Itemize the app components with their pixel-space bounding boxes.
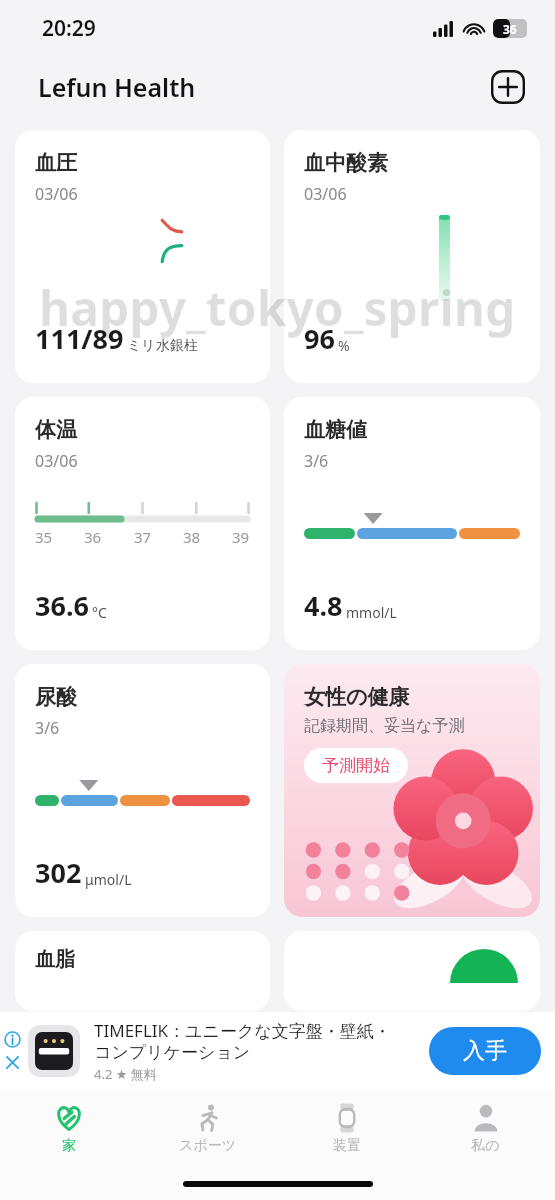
- staticText: 111/89: [35, 320, 124, 357]
- staticText: μmol/L: [85, 870, 132, 889]
- button[interactable]: 入手: [429, 1027, 541, 1075]
- staticText: 39: [232, 527, 250, 547]
- staticText: Lefun Health: [38, 70, 196, 104]
- staticText: 3/6: [304, 450, 329, 472]
- staticText: 35: [35, 527, 53, 547]
- staticText: 予測開始: [322, 755, 390, 776]
- button[interactable]: 家: [0, 1090, 138, 1168]
- button[interactable]: 体温: [15, 397, 270, 650]
- staticText: 38: [183, 527, 201, 547]
- button[interactable]: 血脂: [15, 931, 270, 1011]
- staticText: 体温: [35, 417, 77, 443]
- button[interactable]: 血中酸素: [284, 130, 540, 383]
- staticText: ミリ水銀柱: [127, 337, 198, 355]
- staticText: 私の: [471, 1137, 500, 1155]
- staticText: 4.2 ★ 無料: [94, 1065, 157, 1083]
- button[interactable]: 尿酸: [15, 664, 270, 917]
- staticText: スポーツ: [179, 1137, 236, 1155]
- staticText: happy_tokyo_spring: [39, 275, 516, 340]
- button[interactable]: スポーツ: [138, 1090, 277, 1168]
- staticText: 302: [35, 854, 82, 891]
- button[interactable]: 女性の健康: [284, 664, 540, 917]
- staticText: °C: [92, 603, 107, 622]
- button[interactable]: Close ad: [4, 1054, 21, 1071]
- staticText: 3/6: [35, 717, 60, 739]
- button[interactable]: Add: [491, 70, 525, 104]
- staticText: 03/06: [35, 450, 78, 472]
- staticText: 血圧: [35, 150, 77, 176]
- button[interactable]: 私の: [416, 1090, 555, 1168]
- button[interactable]: 予測開始: [304, 748, 408, 783]
- staticText: 装置: [333, 1137, 361, 1155]
- staticText: 入手: [463, 1037, 507, 1065]
- staticText: 03/06: [35, 183, 78, 205]
- button[interactable]: [284, 931, 540, 1011]
- staticText: 血脂: [35, 947, 75, 972]
- staticText: TIMEFLIK：ユニークな文字盤・壁紙・: [94, 1019, 391, 1042]
- staticText: 血糖値: [304, 417, 367, 443]
- button[interactable]: 装置: [277, 1090, 416, 1168]
- staticText: 女性の健康: [304, 684, 410, 710]
- button[interactable]: 血糖値: [284, 397, 540, 650]
- button[interactable]: Ad info: [4, 1031, 21, 1048]
- staticText: 37: [134, 527, 152, 547]
- staticText: 血中酸素: [304, 150, 388, 176]
- staticText: 36.6: [35, 587, 89, 624]
- staticText: 20:29: [42, 14, 96, 43]
- staticText: mmol/L: [346, 603, 397, 622]
- staticText: 96: [304, 320, 335, 357]
- staticText: 36: [84, 527, 102, 547]
- staticText: コンプリケーション: [94, 1042, 251, 1063]
- button[interactable]: 血圧: [15, 130, 270, 383]
- staticText: 家: [62, 1137, 76, 1155]
- staticText: 4.8: [304, 587, 343, 624]
- staticText: 尿酸: [35, 684, 77, 710]
- staticText: 36: [503, 21, 517, 37]
- staticText: %: [338, 336, 350, 355]
- staticText: 記録期間、妥当な予測: [304, 716, 465, 736]
- staticText: 03/06: [304, 183, 347, 205]
